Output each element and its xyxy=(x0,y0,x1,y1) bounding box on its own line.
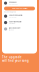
staticText: Anna Reed xyxy=(8,1,16,3)
staticText: will find your song xyxy=(2,59,29,62)
button[interactable]: Glass House Live xyxy=(2,26,37,32)
staticText: Paper Moon Radio xyxy=(9,21,22,22)
staticText: Mira Sol xyxy=(9,29,14,31)
button[interactable]: Paper Moon Radio xyxy=(2,19,37,26)
button[interactable]: Anna Reed xyxy=(2,0,37,6)
staticText: The Vines xyxy=(9,23,16,24)
button[interactable]: Upgrade to Premium xyxy=(4,7,35,10)
staticText: Kara Lane xyxy=(9,16,17,18)
staticText: Upgrade to Premium xyxy=(12,8,27,9)
staticText: Glass House Live xyxy=(9,27,21,29)
staticText: Sunset Drive Home xyxy=(9,14,23,16)
staticText: The upgrade xyxy=(2,55,22,59)
button[interactable]: Sunset Drive Home xyxy=(2,13,37,19)
staticText: Listening now xyxy=(8,3,17,5)
